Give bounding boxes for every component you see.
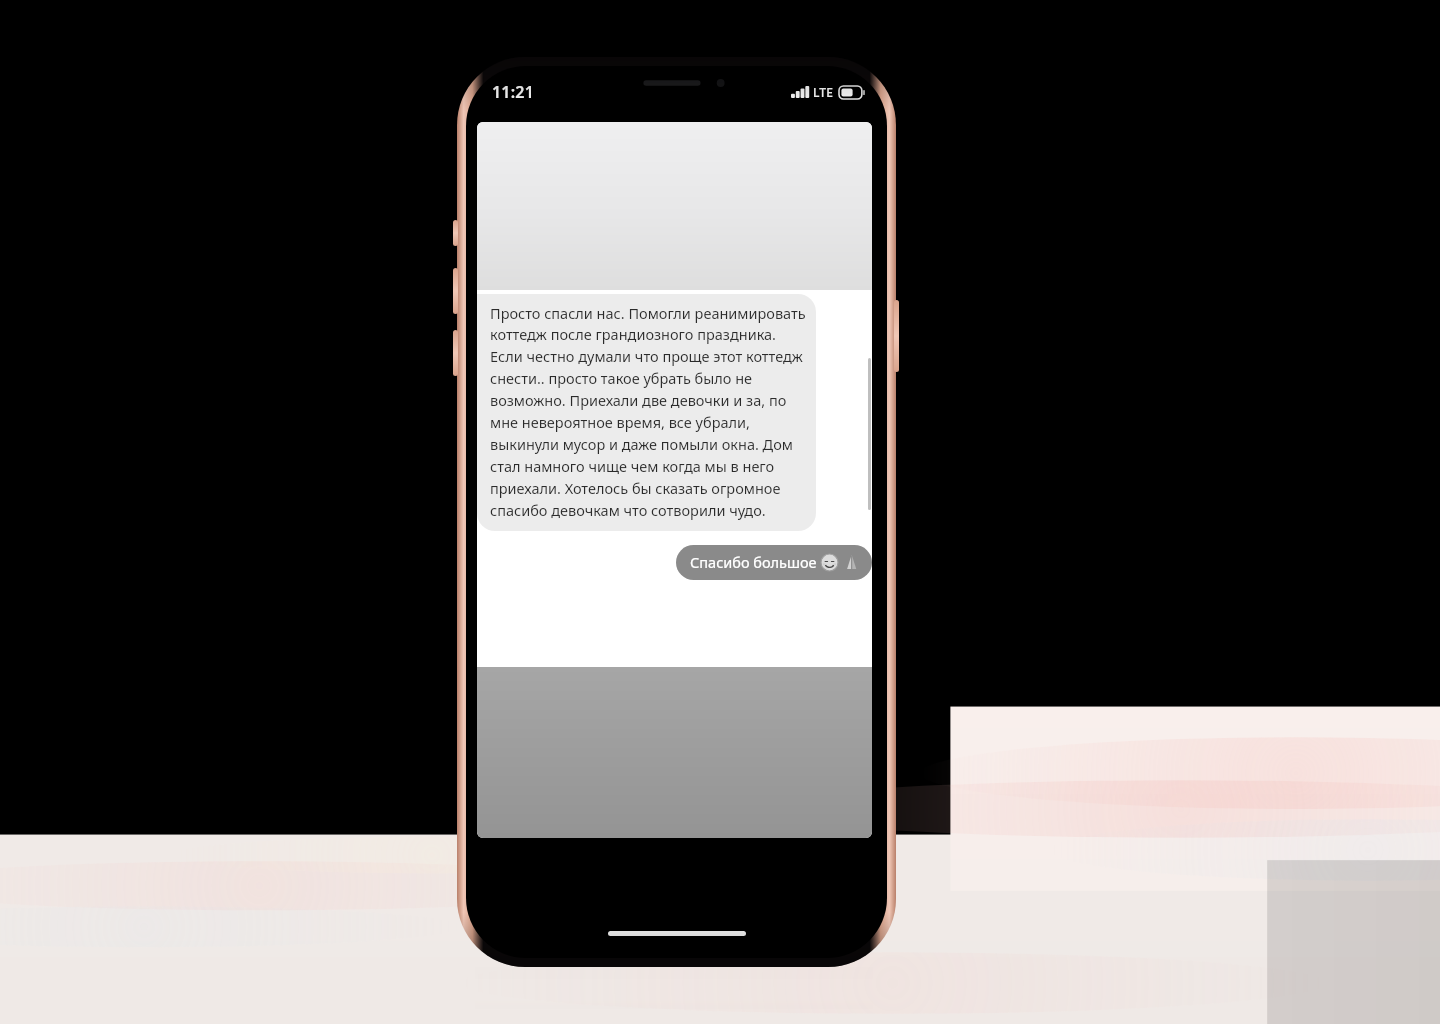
button[interactable]: Просто спасли нас. Помогли реанимировать… [477,294,816,531]
staticText: Спасибо большое [690,552,821,572]
button[interactable]: Спасибо большое [676,545,872,580]
staticText: LTE [813,84,834,100]
staticText: Просто спасли нас. Помогли реанимировать… [490,303,806,520]
button[interactable]: Home [608,931,746,936]
staticText: 11:21 [492,81,535,103]
